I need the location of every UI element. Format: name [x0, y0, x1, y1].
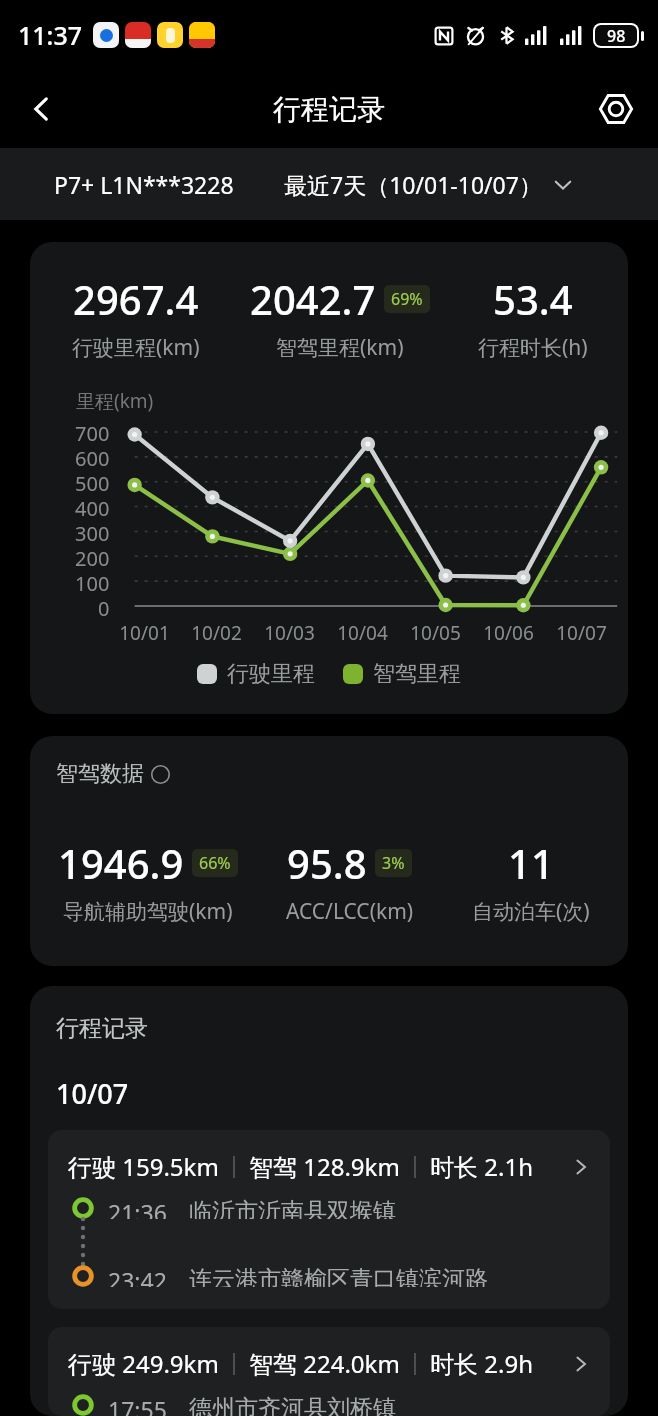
staticText: 10/07 [56, 1075, 129, 1112]
staticText: 700 [75, 420, 110, 445]
staticText: 53.4 [493, 272, 573, 326]
staticText: P7+ L1N***3228 [54, 169, 234, 200]
button[interactable]: P7+ L1N***3228 [54, 169, 234, 200]
staticText: 66% [199, 852, 231, 874]
staticText: 行程时长(h) [478, 333, 588, 362]
staticText: 2967.4 [73, 272, 199, 326]
button[interactable]: 最近7天（10/01-10/07） [284, 169, 572, 200]
staticText: 智驾里程(km) [276, 333, 404, 362]
staticText: 智驾 128.9km [249, 1150, 400, 1183]
staticText: 10/04 [337, 620, 388, 646]
staticText: 0 [98, 595, 110, 620]
staticText: 临沂市沂南县双堠镇 [189, 1197, 396, 1219]
staticText: 500 [75, 470, 110, 495]
staticText: 300 [75, 520, 110, 545]
staticText: 智驾 224.0km [249, 1347, 400, 1380]
staticText: 10/05 [410, 620, 461, 646]
staticText: 3% [382, 852, 405, 874]
staticText: 德州市齐河县刘桥镇 [189, 1394, 396, 1416]
staticText: 10/02 [191, 620, 242, 646]
staticText: 智驾数据 [56, 760, 144, 788]
staticText: 行程记录 [56, 1014, 148, 1043]
staticText: 行驶 249.9km [68, 1347, 219, 1380]
staticText: ACC/LCC(km) [286, 897, 414, 926]
staticText: 行程记录 [273, 92, 385, 127]
staticText: 600 [75, 445, 110, 470]
staticText: 1946.9 [58, 836, 184, 890]
staticText: 行驶里程 [227, 660, 315, 688]
staticText: 行驶 159.5km [68, 1150, 219, 1183]
staticText: 最近7天（10/01-10/07） [284, 169, 542, 200]
staticText: 11 [508, 836, 554, 890]
staticText: 100 [75, 570, 110, 595]
button[interactable]: Back [14, 81, 70, 137]
staticText: 17:55 [108, 1394, 167, 1416]
button[interactable]: Settings [588, 81, 644, 137]
staticText: 智驾里程 [373, 660, 461, 688]
staticText: 导航辅助驾驶(km) [63, 897, 233, 926]
staticText: 10/06 [483, 620, 534, 646]
staticText: 10/03 [264, 620, 315, 646]
staticText: 10/07 [556, 620, 607, 646]
staticText: 里程(km) [76, 388, 154, 414]
staticText: 400 [75, 495, 110, 520]
staticText: 10/01 [119, 620, 170, 646]
staticText: 200 [75, 545, 110, 570]
staticText: 行驶里程(km) [72, 333, 200, 362]
staticText: 69% [391, 288, 423, 310]
staticText: 11:37 [18, 18, 83, 52]
button[interactable]: 行驶 159.5km [48, 1130, 610, 1309]
button[interactable]: 行驶 249.9km [48, 1327, 610, 1416]
staticText: 98 [607, 25, 626, 46]
staticText: 时长 2.9h [430, 1347, 533, 1380]
staticText: 2042.7 [250, 272, 376, 326]
staticText: 连云港市赣榆区青口镇滨河路 [189, 1265, 488, 1287]
staticText: 21:36 [108, 1197, 167, 1219]
button[interactable]: 智驾数据 [56, 760, 170, 788]
staticText: 23:42 [108, 1265, 167, 1287]
staticText: 时长 2.1h [430, 1150, 533, 1183]
staticText: 自动泊车(次) [472, 897, 590, 926]
staticText: 95.8 [287, 836, 367, 890]
